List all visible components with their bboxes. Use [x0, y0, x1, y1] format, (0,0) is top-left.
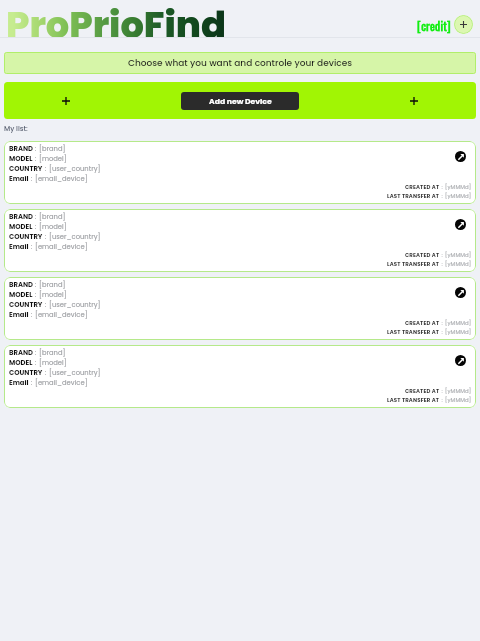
staticText: [yMMMd] — [445, 387, 472, 395]
staticText: : — [440, 192, 445, 200]
staticText: Email — [9, 242, 29, 252]
staticText: [brand] — [39, 280, 66, 290]
staticText: [email_device] — [35, 378, 88, 388]
staticText: LAST TRANSFER AT — [387, 328, 440, 336]
staticText: : — [440, 387, 445, 395]
staticText: : — [33, 280, 39, 290]
staticText: LAST TRANSFER AT — [387, 396, 440, 404]
staticText: [brand] — [39, 348, 66, 358]
button[interactable]: Open device — [455, 151, 466, 162]
staticText: [yMMMd] — [445, 328, 472, 336]
button[interactable]: Add device left — [55, 90, 77, 112]
staticText: : — [33, 144, 39, 154]
staticText: [model] — [39, 358, 67, 368]
staticText: Email — [9, 310, 29, 320]
staticText: : — [33, 358, 39, 368]
staticText: [model] — [39, 154, 67, 164]
button[interactable]: Add device right — [403, 90, 425, 112]
staticText: [model] — [39, 222, 67, 232]
staticText: LAST TRANSFER AT — [387, 260, 440, 268]
staticText: [user_country] — [49, 164, 101, 174]
staticText: : — [440, 260, 445, 268]
staticText: : — [440, 328, 445, 336]
button[interactable]: Add credit — [454, 15, 473, 34]
button[interactable]: BRAND — [4, 345, 476, 408]
staticText: : — [29, 378, 35, 388]
staticText: : — [33, 222, 39, 232]
staticText: : — [43, 232, 49, 242]
staticText: [yMMMd] — [445, 192, 472, 200]
staticText: Email — [9, 174, 29, 184]
staticText: : — [43, 300, 49, 310]
staticText: COUNTRY — [9, 300, 43, 310]
staticText: CREATED AT — [405, 387, 440, 395]
staticText: BRAND — [9, 348, 33, 358]
button[interactable]: BRAND — [4, 141, 476, 204]
staticText: [user_country] — [49, 232, 101, 242]
staticText: MODEL — [9, 290, 33, 300]
staticText: BRAND — [9, 144, 33, 154]
staticText: [yMMMd] — [445, 396, 472, 404]
staticText: MODEL — [9, 154, 33, 164]
staticText: MODEL — [9, 222, 33, 232]
staticText: : — [33, 290, 39, 300]
staticText: MODEL — [9, 358, 33, 368]
staticText: CREATED AT — [405, 183, 440, 191]
staticText: [brand] — [39, 144, 66, 154]
staticText: My list: — [4, 124, 28, 134]
staticText: BRAND — [9, 212, 33, 222]
staticText: [yMMMd] — [445, 319, 472, 327]
staticText: Choose what you want and controle your d… — [128, 57, 353, 70]
staticText: [yMMMd] — [445, 183, 472, 191]
staticText: : — [43, 164, 49, 174]
staticText: BRAND — [9, 280, 33, 290]
staticText: : — [29, 310, 35, 320]
staticText: [email_device] — [35, 242, 88, 252]
staticText: : — [440, 183, 445, 191]
staticText: [email_device] — [35, 310, 88, 320]
staticText: : — [43, 368, 49, 378]
staticText: [model] — [39, 290, 67, 300]
button[interactable]: Choose what you want and controle your d… — [4, 52, 476, 74]
button[interactable]: BRAND — [4, 209, 476, 272]
button[interactable]: Open device — [455, 287, 466, 298]
staticText: : — [440, 396, 445, 404]
staticText: [yMMMd] — [445, 251, 472, 259]
staticText: COUNTRY — [9, 368, 43, 378]
staticText: : — [29, 242, 35, 252]
staticText: Email — [9, 378, 29, 388]
staticText: [brand] — [39, 212, 66, 222]
staticText: [email_device] — [35, 174, 88, 184]
staticText: : — [440, 319, 445, 327]
staticText: [user_country] — [49, 368, 101, 378]
staticText: COUNTRY — [9, 164, 43, 174]
staticText: CREATED AT — [405, 251, 440, 259]
staticText: : — [33, 154, 39, 164]
staticText: : — [33, 212, 39, 222]
button[interactable]: Open device — [455, 219, 466, 230]
staticText: [user_country] — [49, 300, 101, 310]
staticText: : — [440, 251, 445, 259]
button[interactable]: BRAND — [4, 277, 476, 340]
button[interactable]: Add new Device — [181, 92, 299, 110]
staticText: : — [29, 174, 35, 184]
staticText: CREATED AT — [405, 319, 440, 327]
staticText: COUNTRY — [9, 232, 43, 242]
button[interactable]: Open device — [455, 355, 466, 366]
staticText: : — [33, 348, 39, 358]
staticText: [yMMMd] — [445, 260, 472, 268]
staticText: ProPrioFind — [6, 0, 227, 37]
button[interactable]: [credit] — [417, 17, 451, 34]
staticText: LAST TRANSFER AT — [387, 192, 440, 200]
staticText: Add new Device — [209, 96, 272, 107]
